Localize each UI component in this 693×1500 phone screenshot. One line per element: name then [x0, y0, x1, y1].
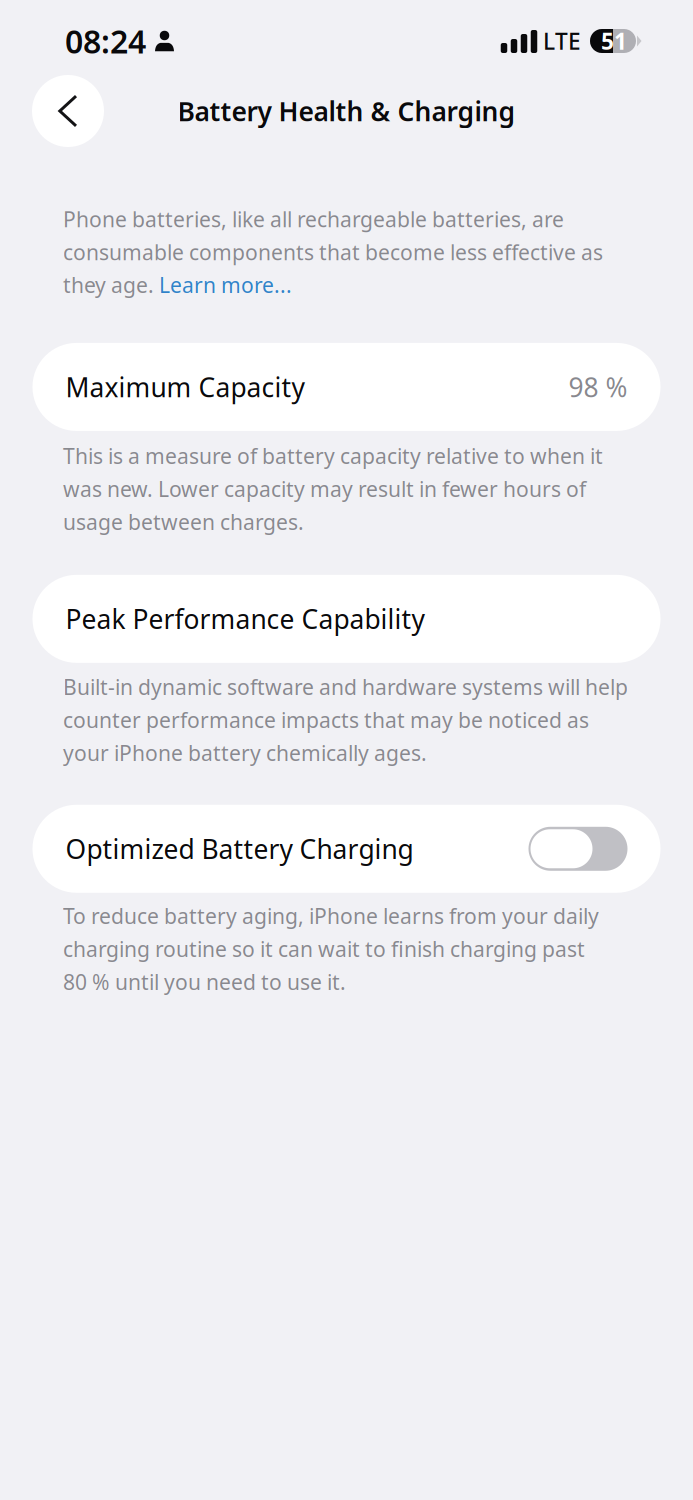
- staticText: Maximum Capacity: [65, 369, 304, 404]
- staticText: 51: [601, 26, 627, 56]
- button[interactable]: Optimized Battery Charging: [32, 805, 660, 893]
- staticText: consumable components that become less e…: [63, 238, 603, 266]
- staticText: Learn more...: [159, 271, 292, 299]
- staticText: Battery Health & Charging: [177, 93, 515, 129]
- button[interactable]: Back: [32, 75, 104, 147]
- staticText: 08:24: [65, 20, 146, 62]
- staticText: To reduce battery aging, iPhone learns f…: [63, 902, 599, 930]
- button[interactable]: Peak Performance Capability: [32, 575, 660, 663]
- staticText: 80 % until you need to use it.: [63, 968, 346, 996]
- staticText: Built-in dynamic software and hardware s…: [63, 673, 628, 701]
- staticText: Phone batteries, like all rechargeable b…: [63, 205, 564, 233]
- staticText: your iPhone battery chemically ages.: [63, 739, 427, 767]
- staticText: was new. Lower capacity may result in fe…: [63, 475, 586, 503]
- staticText: counter performance impacts that may be …: [63, 706, 589, 734]
- staticText: Peak Performance Capability: [65, 601, 424, 636]
- staticText: This is a measure of battery capacity re…: [63, 442, 603, 470]
- staticText: usage between charges.: [63, 508, 304, 536]
- staticText: charging routine so it can wait to finis…: [63, 935, 585, 963]
- staticText: 98 %: [568, 369, 627, 404]
- staticText: LTE: [543, 26, 581, 56]
- staticText: Optimized Battery Charging: [65, 831, 413, 866]
- button[interactable]: Maximum Capacity: [32, 343, 660, 431]
- staticText: they age.: [63, 271, 159, 299]
- button[interactable]: Learn more...: [159, 271, 292, 299]
